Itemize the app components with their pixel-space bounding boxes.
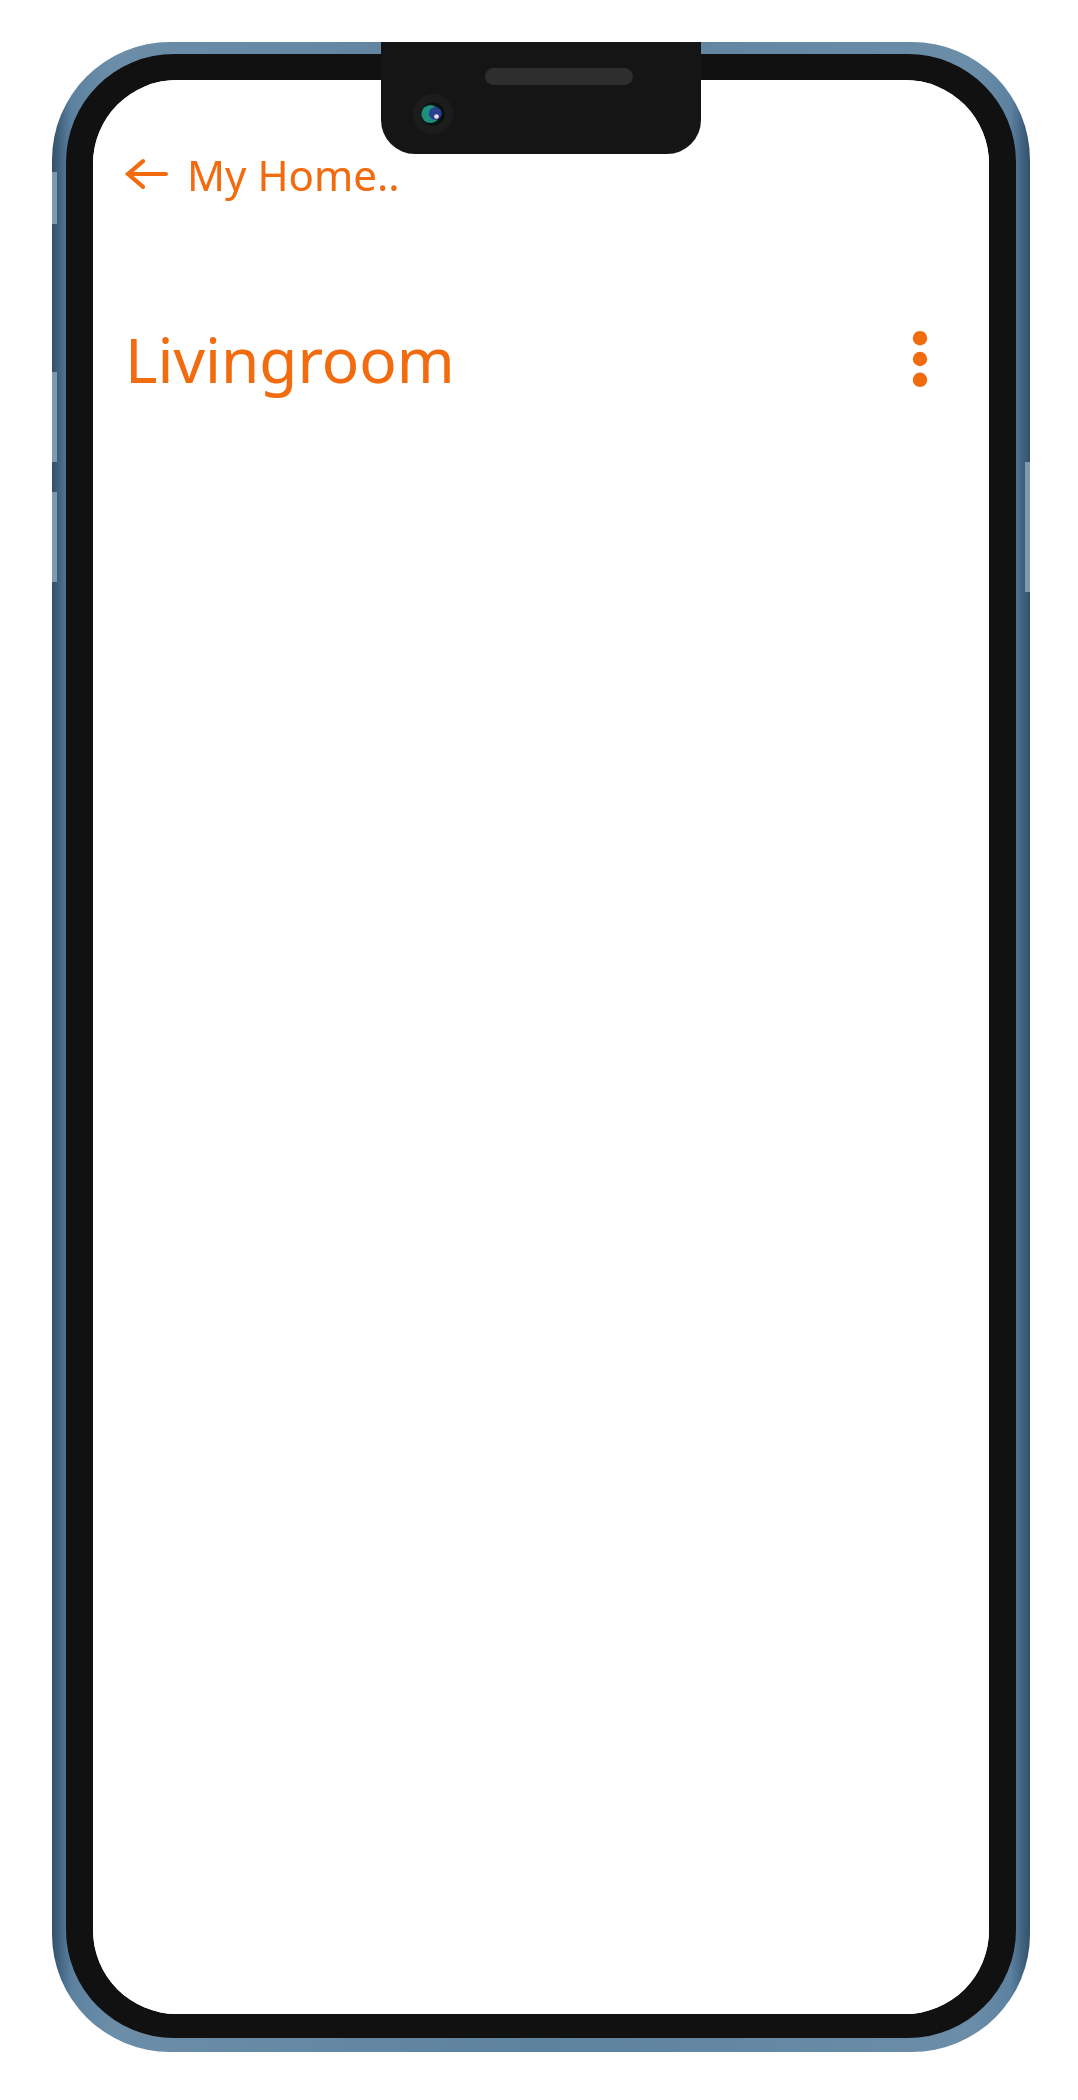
button[interactable]: Back xyxy=(123,138,400,210)
button[interactable]: Livingroom xyxy=(125,317,455,401)
staticText: My Home.. xyxy=(187,146,400,203)
button[interactable]: More options xyxy=(887,321,953,397)
button[interactable]: Back xyxy=(123,150,171,198)
